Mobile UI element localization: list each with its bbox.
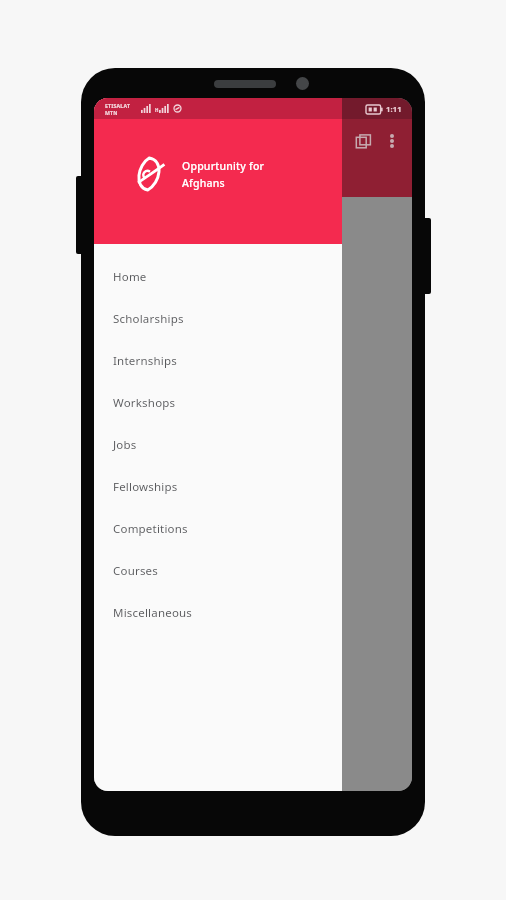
button[interactable]: Jobs [94,424,342,466]
staticText: MTN [105,109,118,116]
button[interactable]: Bookmarks [350,128,376,154]
staticText: Internships [113,353,177,369]
button[interactable]: Internships [94,340,342,382]
button[interactable]: Scholarships [94,298,342,340]
staticText: Afghans [182,176,225,190]
button[interactable]: Miscellaneous [94,592,342,634]
button[interactable]: More options [380,129,404,153]
button[interactable]: Fellowships [94,466,342,508]
staticText: Jobs [113,437,137,453]
staticText: Home [113,269,147,285]
staticText: ETISALAT [105,102,131,109]
staticText: H [155,107,159,113]
button[interactable]: Competitions [94,508,342,550]
staticText: Scholarships [113,311,184,327]
button[interactable]: Courses [94,550,342,592]
button[interactable]: Search [318,128,344,154]
staticText: Competitions [113,521,188,537]
staticText: Courses [113,563,158,579]
button[interactable]: Workshops [94,382,342,424]
staticText: Oppurtunity for [182,159,265,173]
button[interactable]: Home [94,256,342,298]
staticText: Workshops [113,395,176,411]
staticText: Miscellaneous [113,605,193,621]
staticText: Fellowships [113,479,178,495]
staticText: 1:11 [386,104,402,114]
